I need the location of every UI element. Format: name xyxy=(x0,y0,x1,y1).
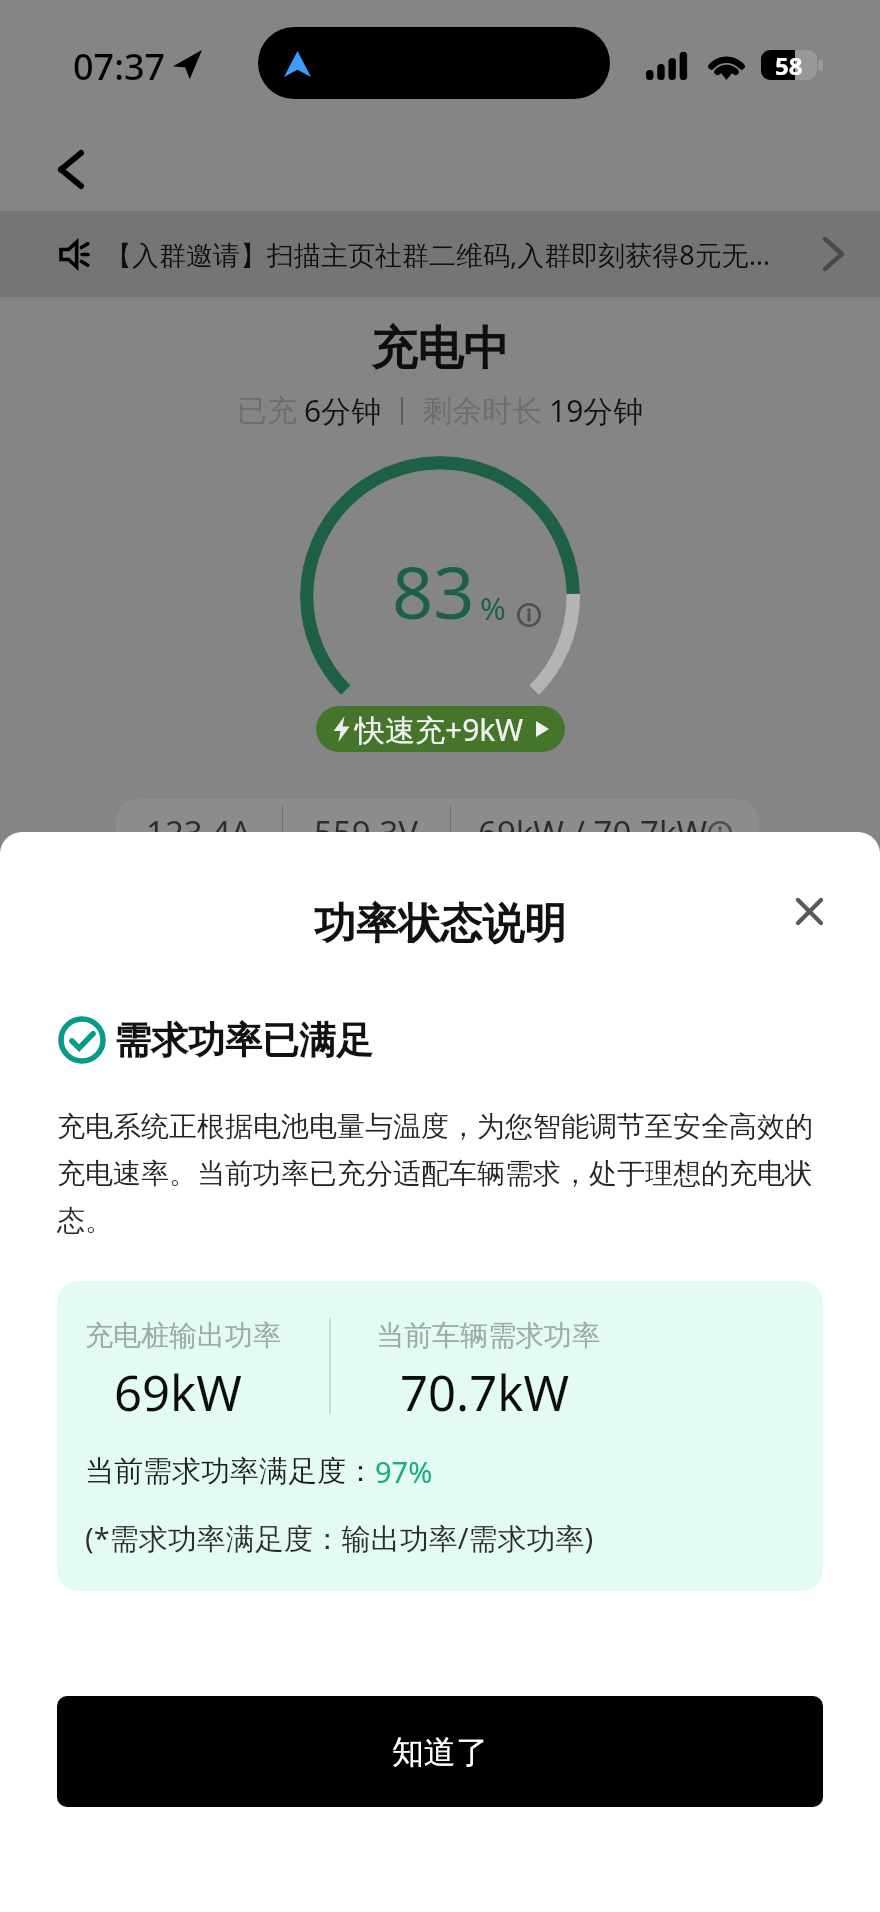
staticText: 19分钟 xyxy=(549,390,644,431)
staticText: 剩余时长 xyxy=(422,392,542,430)
button[interactable]: Back xyxy=(41,139,101,199)
staticText: 知道了 xyxy=(392,1732,488,1772)
button[interactable]: 知道了 xyxy=(57,1696,823,1807)
staticText: 6分钟 xyxy=(304,390,382,431)
staticText: 【入群邀请】扫描主页社群二维码,入群即刻获得8元无… xyxy=(105,236,813,273)
staticText: 需求功率已满足 xyxy=(114,1017,373,1064)
staticText: 已充 xyxy=(237,392,297,430)
staticText: 559.3V xyxy=(314,810,419,855)
staticText: 充电中 xyxy=(0,320,880,378)
staticText: 当前需求功率满足度： xyxy=(85,1453,375,1490)
button[interactable]: 快速充+9kW xyxy=(316,706,565,752)
staticText: 69kW / 70.7kW xyxy=(478,810,708,855)
staticText: (*需求功率满足度：输出功率/需求功率) xyxy=(85,1518,594,1558)
staticText: 97% xyxy=(375,1452,433,1491)
staticText: 快速充+9kW xyxy=(355,709,524,750)
button[interactable]: Close xyxy=(781,883,837,939)
staticText: % xyxy=(480,587,506,629)
staticText: 充电桩输出功率 xyxy=(85,1318,281,1353)
button[interactable]: 【入群邀请】扫描主页社群二维码,入群即刻获得8元无… xyxy=(0,211,880,297)
staticText: 功率状态说明 xyxy=(314,898,566,951)
staticText: 充电系统正根据电池电量与温度，为您智能调节至安全高效的充电速率。当前功率已充分适… xyxy=(57,1109,834,1238)
staticText: 当前车辆需求功率 xyxy=(376,1318,600,1353)
staticText: 70.7kW xyxy=(400,1359,569,1426)
staticText: 83 xyxy=(392,542,475,640)
staticText: 07:37 xyxy=(73,42,166,91)
staticText: 123.4A xyxy=(146,810,252,855)
staticText: 58 xyxy=(775,50,803,79)
staticText: 69kW xyxy=(114,1359,242,1426)
